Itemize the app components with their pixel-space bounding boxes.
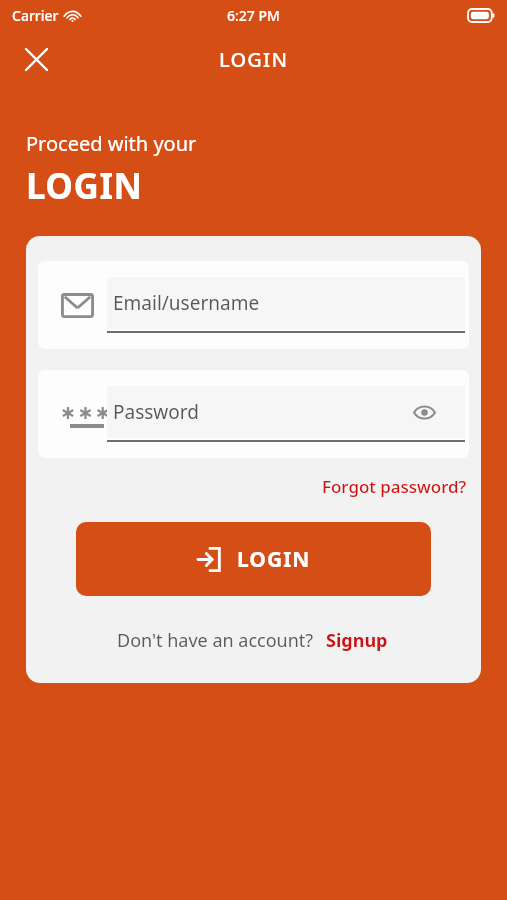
staticText: LOGIN	[237, 545, 311, 574]
staticText: Password	[113, 399, 199, 425]
staticText: Don't have an account?	[117, 628, 314, 653]
staticText: LOGIN	[26, 162, 143, 210]
staticText: LOGIN	[219, 46, 289, 73]
staticText: Proceed with your	[26, 130, 197, 157]
staticText: Email/username	[113, 290, 260, 316]
button[interactable]: ∗∗∗	[38, 370, 469, 458]
staticText: 6:27 PM	[227, 6, 280, 25]
button[interactable]: Close	[14, 37, 58, 81]
staticText: Signup	[326, 628, 388, 653]
button[interactable]: Email/username	[38, 261, 469, 349]
button[interactable]: Forgot password?	[318, 469, 471, 504]
button[interactable]: LOGIN	[76, 522, 431, 596]
staticText: Forgot password?	[322, 475, 467, 498]
button[interactable]: Show password	[409, 397, 439, 427]
staticText: ∗∗∗	[60, 401, 113, 423]
button[interactable]: Signup	[324, 624, 390, 657]
staticText: Carrier	[12, 6, 59, 25]
